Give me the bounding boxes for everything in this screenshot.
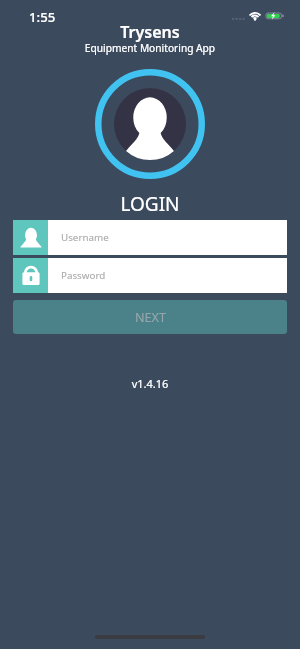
button[interactable]: NEXT (13, 300, 287, 334)
other: Password (13, 258, 48, 293)
staticText: v1.4.16 (0, 376, 300, 391)
button[interactable]: Username (13, 220, 287, 255)
button[interactable]: Password (13, 258, 287, 293)
staticText: NEXT (135, 309, 166, 326)
staticText: LOGIN (0, 191, 300, 217)
staticText: Password (61, 269, 106, 282)
staticText: Equipment Monitoring App (0, 41, 300, 55)
other: Username (13, 220, 48, 255)
staticText: 1:55 (29, 8, 56, 26)
staticText: Username (61, 231, 109, 244)
staticText: Trysens (0, 21, 300, 43)
